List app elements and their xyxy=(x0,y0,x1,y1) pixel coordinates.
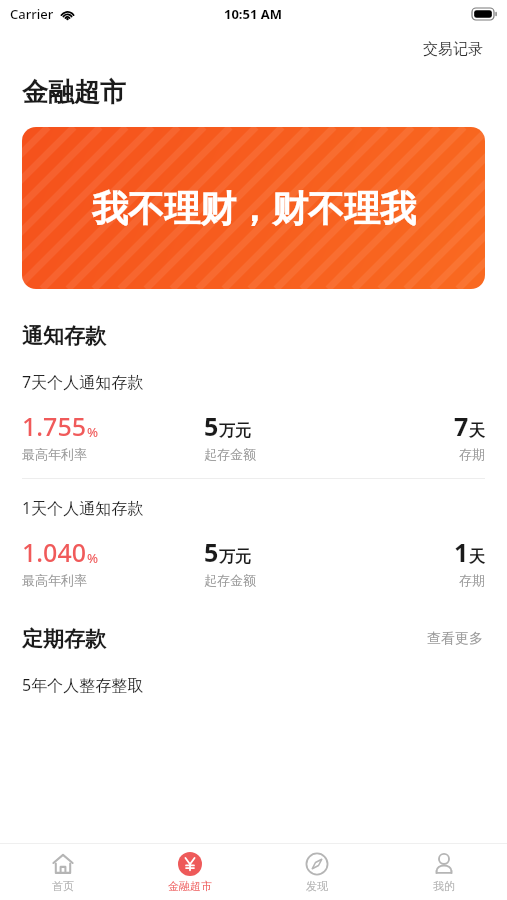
staticText: 我不理财，财不理我 xyxy=(92,186,416,231)
staticText: % xyxy=(87,423,99,441)
staticText: 最高年利率 xyxy=(22,572,87,588)
staticText: 最高年利率 xyxy=(22,446,87,462)
staticText: 万元 xyxy=(219,547,251,567)
staticText: 金融超市 xyxy=(22,76,126,109)
staticText: 10:51 AM xyxy=(224,5,283,23)
staticText: 1.040 xyxy=(22,535,87,569)
staticText: Carrier xyxy=(10,5,54,23)
button[interactable]: 7天个人通知存款 xyxy=(0,371,507,462)
button[interactable]: 查看更多 xyxy=(425,626,485,652)
staticText: 通知存款 xyxy=(22,323,106,349)
staticText: 交易记录 xyxy=(423,40,483,59)
button[interactable]: 我不理财，财不理我 xyxy=(22,127,485,289)
staticText: 1 xyxy=(454,535,469,569)
staticText: 7天个人通知存款 xyxy=(22,371,144,393)
staticText: 5年个人整存整取 xyxy=(22,674,144,696)
staticText: 存期 xyxy=(459,446,485,462)
staticText: 起存金额 xyxy=(204,446,256,462)
staticText: 7 xyxy=(454,409,469,443)
staticText: 5 xyxy=(204,535,219,569)
staticText: 发现 xyxy=(306,879,328,893)
staticText: 我的 xyxy=(433,879,455,893)
button[interactable]: 发现 xyxy=(253,847,380,898)
button[interactable]: 首页 xyxy=(0,847,126,898)
button[interactable]: 交易记录 xyxy=(421,36,485,63)
staticText: 万元 xyxy=(219,421,251,441)
button[interactable]: 我的 xyxy=(380,847,507,898)
staticText: 定期存款 xyxy=(22,626,106,652)
staticText: 天 xyxy=(469,547,485,567)
button[interactable]: 1天个人通知存款 xyxy=(0,497,507,588)
staticText: 1.755 xyxy=(22,409,87,443)
staticText: 存期 xyxy=(459,572,485,588)
staticText: 天 xyxy=(469,421,485,441)
staticText: 查看更多 xyxy=(427,630,483,648)
staticText: 金融超市 xyxy=(168,879,212,893)
staticText: 5 xyxy=(204,409,219,443)
button[interactable]: 金融超市 xyxy=(126,847,253,898)
staticText: 1天个人通知存款 xyxy=(22,497,144,519)
staticText: 起存金额 xyxy=(204,572,256,588)
staticText: % xyxy=(87,549,99,567)
staticText: 首页 xyxy=(52,879,74,893)
